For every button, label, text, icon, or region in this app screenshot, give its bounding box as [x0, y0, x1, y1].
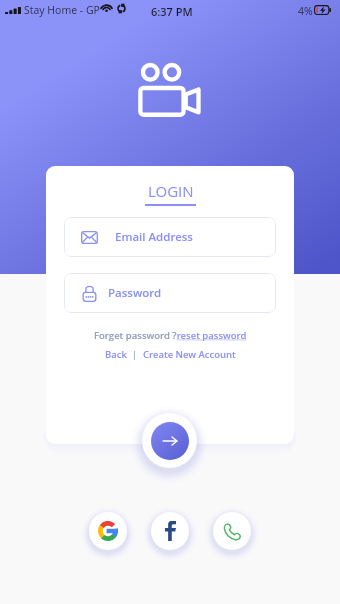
staticText: Password — [108, 285, 162, 301]
button[interactable]: Sign in with phone — [213, 512, 251, 550]
button[interactable]: Password — [64, 273, 276, 313]
button[interactable]: Email Address — [64, 217, 276, 257]
button[interactable]: Submit login — [142, 413, 197, 468]
button[interactable]: Back — [105, 348, 127, 361]
button[interactable]: Sign in with Facebook — [151, 512, 189, 550]
button[interactable]: Create New Account — [143, 348, 236, 361]
staticText: 6:37 PM — [151, 4, 193, 19]
staticText: Forget password ?reset password — [94, 329, 247, 342]
staticText: 4% — [298, 4, 313, 18]
button[interactable]: Sign in with Google — [89, 512, 127, 550]
staticText: Stay Home - GP — [24, 3, 100, 17]
button[interactable]: Forget password ?reset password — [46, 329, 294, 342]
button[interactable]: LOGIN — [148, 181, 194, 201]
staticText: | — [127, 348, 143, 361]
staticText: Email Address — [115, 229, 193, 245]
